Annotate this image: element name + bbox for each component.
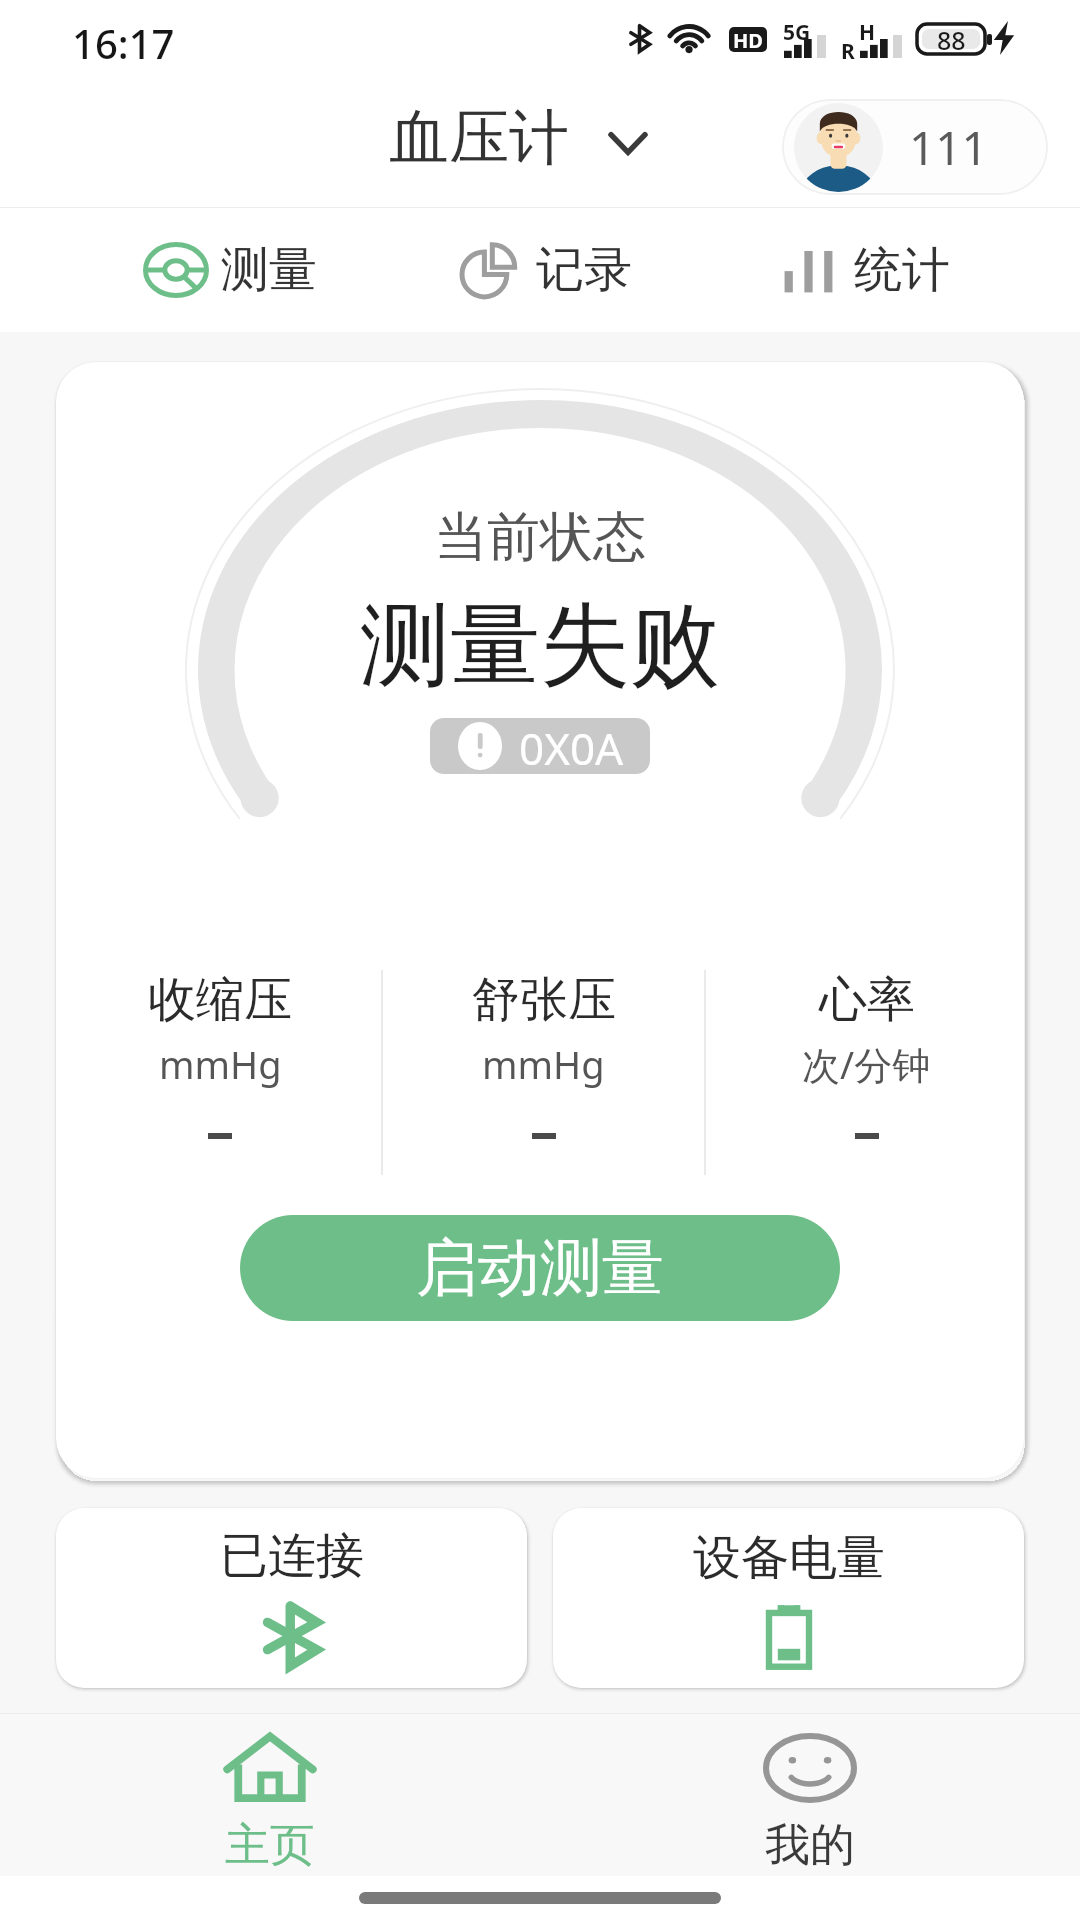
button[interactable]: 测量 bbox=[143, 208, 317, 332]
button[interactable]: 记录 bbox=[458, 208, 632, 332]
staticText: 111 bbox=[909, 116, 988, 179]
button[interactable]: 统计 bbox=[776, 208, 950, 332]
staticText: 当前状态 bbox=[434, 504, 646, 571]
staticText: 5G bbox=[783, 18, 811, 47]
staticText: mmHg bbox=[159, 1038, 282, 1090]
staticText: 已连接 bbox=[220, 1526, 364, 1586]
staticText: 统计 bbox=[854, 240, 950, 300]
button[interactable]: 111 bbox=[782, 99, 1048, 195]
staticText: 测量失败 bbox=[360, 589, 720, 702]
staticText: 测量 bbox=[221, 240, 317, 300]
button[interactable]: 主页 bbox=[160, 1714, 380, 1876]
staticText: mmHg bbox=[482, 1038, 605, 1090]
staticText: 88 bbox=[937, 23, 966, 53]
staticText: R bbox=[841, 37, 855, 66]
staticText: 血压计 bbox=[389, 100, 569, 176]
staticText: HD bbox=[733, 27, 763, 52]
staticText: 心率 bbox=[819, 970, 915, 1030]
staticText: H bbox=[859, 18, 876, 47]
other: Select device bbox=[608, 130, 648, 156]
button[interactable]: 我的 bbox=[700, 1714, 920, 1876]
button[interactable]: 已连接 bbox=[56, 1508, 527, 1688]
staticText: 16:17 bbox=[72, 16, 175, 70]
staticText: 次/分钟 bbox=[802, 1038, 931, 1090]
staticText: 启动测量 bbox=[416, 1229, 664, 1307]
staticText: 我的 bbox=[765, 1817, 855, 1874]
staticText: 设备电量 bbox=[693, 1528, 885, 1588]
staticText: 收缩压 bbox=[148, 970, 292, 1030]
staticText: 主页 bbox=[225, 1817, 315, 1874]
button[interactable]: 设备电量 bbox=[553, 1508, 1024, 1688]
button[interactable]: 启动测量 bbox=[240, 1215, 840, 1321]
button[interactable]: 血压计 bbox=[389, 100, 648, 176]
staticText: 记录 bbox=[536, 240, 632, 300]
staticText: 0X0A bbox=[519, 718, 624, 774]
staticText: 舒张压 bbox=[472, 970, 616, 1030]
